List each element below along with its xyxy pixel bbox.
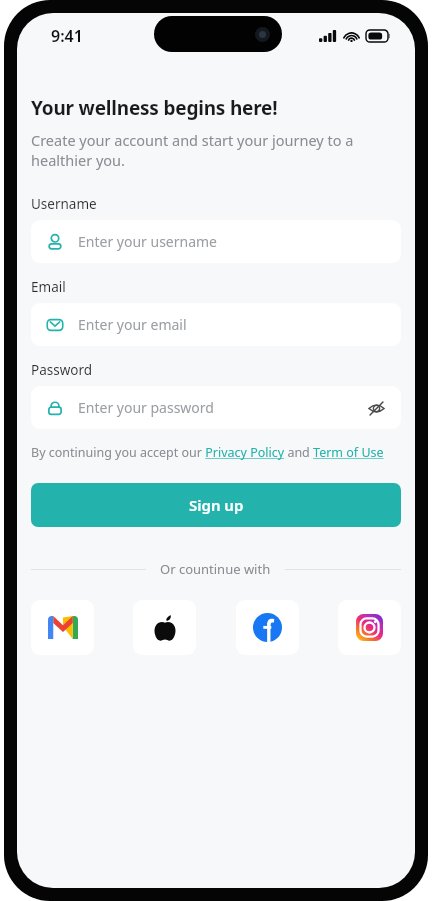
- staticText: Enter your username: [78, 232, 218, 251]
- button[interactable]: Sign up with Facebook: [236, 600, 299, 655]
- button[interactable]: Enter your password: [31, 386, 401, 429]
- button[interactable]: Show password: [365, 397, 387, 419]
- staticText: Enter your email: [78, 315, 187, 334]
- button[interactable]: Sign up with Instagram: [338, 600, 401, 655]
- staticText: 9:41: [51, 25, 83, 47]
- staticText: Password: [31, 361, 93, 379]
- staticText: Email: [31, 278, 66, 296]
- button[interactable]: Enter your email: [31, 303, 401, 346]
- button[interactable]: Sign up: [31, 483, 401, 527]
- staticText: Or countinue with: [160, 560, 271, 578]
- staticText: Username: [31, 195, 97, 213]
- staticText: Enter your password: [78, 398, 214, 417]
- staticText: Sign up: [189, 495, 244, 515]
- button[interactable]: Sign up with Apple: [133, 600, 196, 655]
- button[interactable]: Enter your username: [31, 220, 401, 263]
- button[interactable]: Sign up with Google: [31, 600, 94, 655]
- button[interactable]: By continuing you accept our Privacy Pol…: [31, 444, 401, 461]
- staticText: Your wellness begins here!: [31, 95, 278, 121]
- staticText: By continuing you accept our Privacy Pol…: [31, 444, 384, 461]
- staticText: Create your account and start your journ…: [31, 130, 401, 171]
